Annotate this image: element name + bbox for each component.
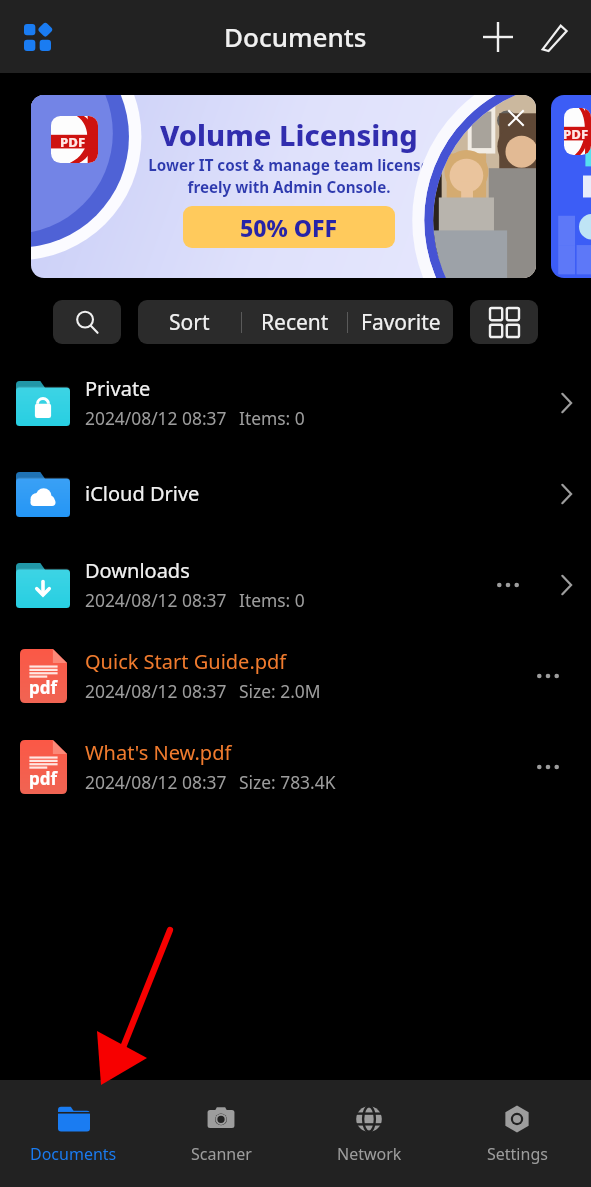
button[interactable]: Sort — [138, 300, 241, 344]
staticText: Recent — [261, 308, 329, 337]
button[interactable]: Scanner — [147, 1080, 295, 1187]
staticText: Downloads — [85, 557, 190, 584]
staticText: Scanner — [191, 1143, 252, 1165]
staticText: Lower IT cost & manage team license free… — [148, 155, 430, 198]
staticText: Favorite — [361, 308, 441, 337]
button[interactable]: Favorite — [348, 300, 453, 344]
button[interactable]: Network — [295, 1080, 443, 1187]
staticText: Private — [85, 375, 151, 402]
staticText: Volume Licensing — [160, 115, 418, 154]
button[interactable]: PDF — [31, 95, 536, 278]
button[interactable]: More options — [486, 563, 530, 607]
button[interactable]: Private — [0, 357, 591, 448]
staticText: Settings — [487, 1143, 548, 1165]
button[interactable]: Grid view — [470, 300, 538, 344]
button[interactable]: Apps — [14, 14, 60, 60]
button[interactable]: Search — [53, 300, 121, 344]
staticText: pdf — [29, 676, 58, 699]
button[interactable]: More options — [526, 745, 570, 789]
staticText: Size: 783.4K — [239, 770, 336, 794]
staticText: 50% OFF — [240, 212, 338, 243]
staticText: Quick Start Guide.pdf — [85, 648, 287, 675]
staticText: pdf — [29, 767, 58, 790]
staticText: What's New.pdf — [85, 739, 232, 766]
staticText: Size: 2.0M — [239, 679, 321, 703]
staticText: Documents — [224, 19, 367, 54]
button[interactable]: Documents — [0, 1080, 147, 1187]
staticText: Sort — [169, 308, 210, 337]
button[interactable]: iCloud Drive — [0, 448, 591, 539]
button[interactable]: Edit — [531, 14, 577, 60]
button[interactable]: pdf — [0, 630, 591, 721]
staticText: Items: 0 — [239, 406, 305, 430]
button[interactable]: Recent — [242, 300, 347, 344]
staticText: 2024/08/12 08:37 — [85, 588, 227, 612]
staticText: PDF — [564, 125, 589, 143]
button[interactable]: pdf — [0, 721, 591, 812]
staticText: Items: 0 — [239, 588, 305, 612]
button[interactable]: PDF — [551, 95, 591, 278]
button[interactable]: Close ad — [501, 103, 531, 133]
button[interactable]: Settings — [443, 1080, 591, 1187]
staticText: Documents — [30, 1143, 117, 1165]
button[interactable]: Downloads — [0, 539, 591, 630]
staticText: iCloud Drive — [85, 480, 200, 507]
staticText: 2024/08/12 08:37 — [85, 770, 227, 794]
button[interactable]: Add — [475, 14, 521, 60]
staticText: Network — [337, 1143, 402, 1165]
staticText: 2024/08/12 08:37 — [85, 679, 227, 703]
staticText: PDF — [60, 133, 86, 151]
button[interactable]: 50% OFF — [183, 206, 395, 248]
button[interactable]: More options — [526, 654, 570, 698]
staticText: 2024/08/12 08:37 — [85, 406, 227, 430]
